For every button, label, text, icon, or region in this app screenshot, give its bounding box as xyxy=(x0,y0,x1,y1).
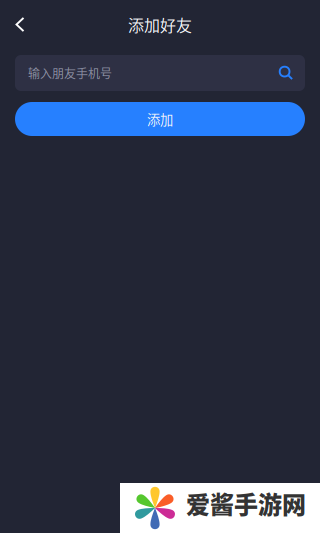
staticText: 添加好友 xyxy=(128,13,192,36)
staticText: 输入朋友手机号 xyxy=(28,64,112,82)
staticText: 添加 xyxy=(147,109,173,129)
staticText: 爱酱手游网 xyxy=(186,486,306,520)
button[interactable]: 添加 xyxy=(15,102,305,136)
button[interactable]: 输入朋友手机号 xyxy=(15,55,305,91)
button[interactable]: Back xyxy=(0,2,40,46)
